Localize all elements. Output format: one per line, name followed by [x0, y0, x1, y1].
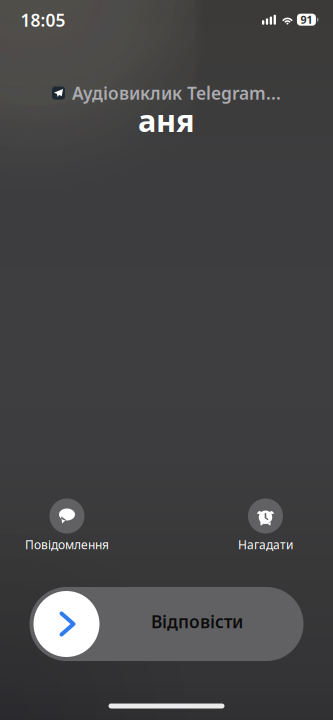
staticText: Нагадати [238, 536, 293, 552]
button[interactable]: Відповісти [29, 587, 303, 661]
staticText: 18:05 [20, 8, 65, 31]
staticText: 91 [300, 13, 312, 27]
button[interactable]: Нагадати [218, 498, 312, 558]
staticText: Відповісти [151, 610, 243, 633]
staticText: Аудіовиклик Telegram... [72, 81, 281, 104]
staticText: аня [138, 100, 195, 140]
staticText: Повідомлення [25, 536, 109, 552]
button[interactable]: Повідомлення [20, 498, 114, 558]
